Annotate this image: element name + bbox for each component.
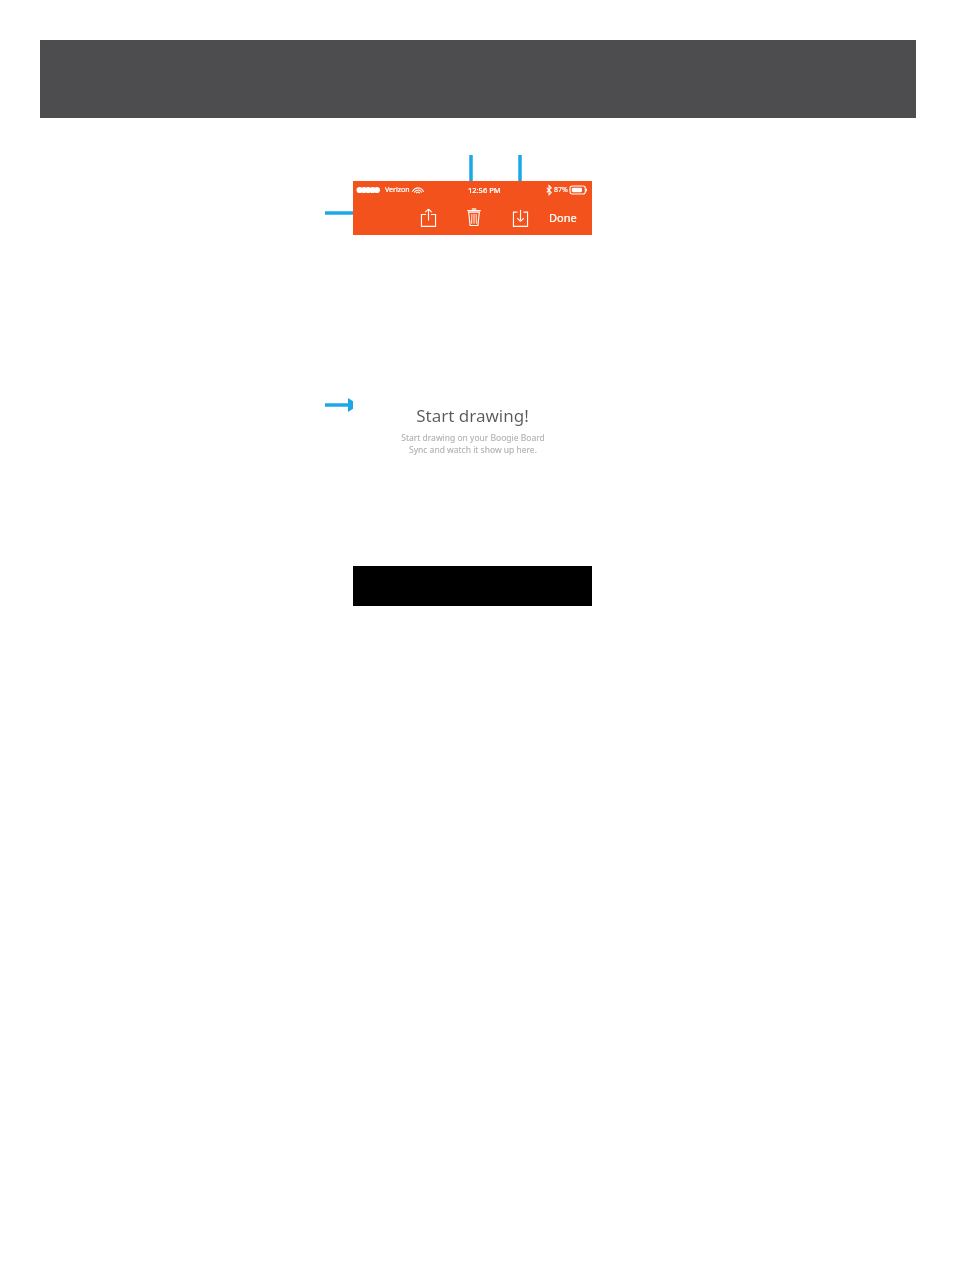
button[interactable]: Delete [459, 202, 489, 232]
staticText: Start drawing on your Boogie Board Sync … [401, 432, 545, 456]
staticText: 87% [554, 185, 568, 195]
button[interactable]: Share [413, 202, 443, 232]
button[interactable]: Save [505, 202, 535, 232]
button[interactable]: Done [545, 202, 581, 232]
staticText: 12:56 PM [468, 185, 501, 195]
staticText: Start drawing! [416, 404, 529, 427]
staticText: Done [549, 210, 577, 225]
staticText: Verizon [385, 185, 410, 195]
